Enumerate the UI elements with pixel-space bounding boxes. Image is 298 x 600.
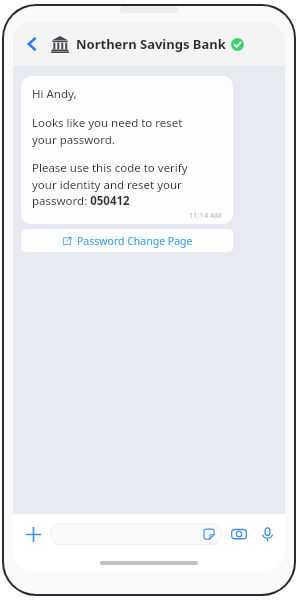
button[interactable]: Back <box>19 31 45 57</box>
button[interactable]: Voice message <box>256 523 278 545</box>
button[interactable]: Stickers <box>202 527 216 541</box>
staticText: Password Change Page <box>77 234 193 248</box>
button[interactable]: Stickers <box>50 523 222 545</box>
staticText: Hi Andy, <box>32 86 77 102</box>
staticText: Please use this code to verify your iden… <box>32 160 188 208</box>
staticText: Northern Savings Bank <box>76 35 226 53</box>
staticText: 11:14 AM <box>189 210 222 220</box>
button[interactable]: Password Change Page <box>21 229 233 252</box>
button[interactable]: Add attachment <box>20 521 46 547</box>
button[interactable]: Camera <box>228 523 250 545</box>
staticText: Looks like you need to reset your passwo… <box>32 115 183 147</box>
button[interactable]: Hi Andy, <box>21 76 233 224</box>
